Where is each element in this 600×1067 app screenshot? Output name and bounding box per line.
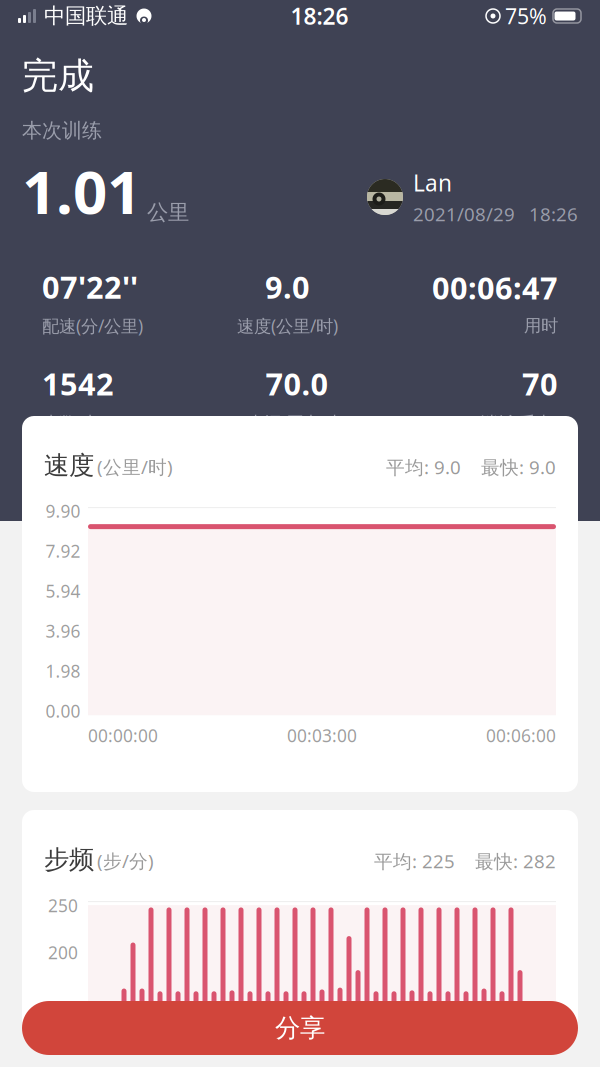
staticText: (步/分) — [97, 848, 154, 873]
staticText: 平均: 225 — [374, 849, 455, 873]
staticText: 用时 — [524, 315, 558, 336]
staticText: 5.94 — [45, 580, 80, 603]
button[interactable]: 分享 — [22, 1001, 578, 1055]
staticText: 00:06:00 — [486, 724, 556, 747]
staticText: Lan — [413, 168, 452, 198]
staticText: 速度 — [44, 450, 94, 481]
staticText: 完成 — [22, 54, 94, 98]
staticText: 步频 — [44, 844, 94, 875]
staticText: 70 — [522, 363, 558, 404]
staticText: 消耗(千卡) — [480, 411, 558, 434]
staticText: 2021/08/29 — [413, 202, 515, 226]
staticText: 中国联通 — [44, 3, 128, 29]
staticText: 步数(步) — [42, 411, 103, 434]
staticText: 最快: 9.0 — [481, 455, 556, 479]
staticText: 9.0 — [265, 266, 310, 307]
staticText: 00:00:00 — [88, 724, 158, 747]
staticText: 本次训练 — [22, 118, 102, 143]
staticText: 步幅(厘米/步) — [246, 411, 347, 434]
staticText: 250 — [48, 894, 78, 917]
staticText: 平均: 9.0 — [386, 455, 461, 479]
staticText: 1.01 — [22, 151, 141, 230]
staticText: 200 — [48, 941, 78, 964]
staticText: 7.92 — [45, 540, 80, 563]
staticText: 00:03:00 — [287, 724, 357, 747]
staticText: 18:26 — [290, 1, 348, 31]
staticText: 速度(公里/时) — [237, 314, 338, 337]
staticText: 9.90 — [45, 500, 80, 523]
staticText: 70.0 — [265, 363, 328, 404]
staticText: 0.00 — [45, 700, 80, 723]
staticText: 75% — [505, 2, 547, 30]
staticText: 1542 — [42, 363, 114, 404]
staticText: 18:26 — [529, 202, 578, 226]
staticText: 公里 — [147, 199, 189, 225]
staticText: 分享 — [275, 1012, 325, 1043]
staticText: 1.98 — [45, 660, 80, 683]
staticText: 00:06:47 — [432, 267, 558, 308]
staticText: 3.96 — [45, 620, 80, 643]
staticText: (公里/时) — [97, 454, 173, 479]
staticText: 最快: 282 — [475, 849, 556, 873]
staticText: 配速(分/公里) — [42, 314, 143, 337]
staticText: 07'22'' — [42, 266, 138, 307]
